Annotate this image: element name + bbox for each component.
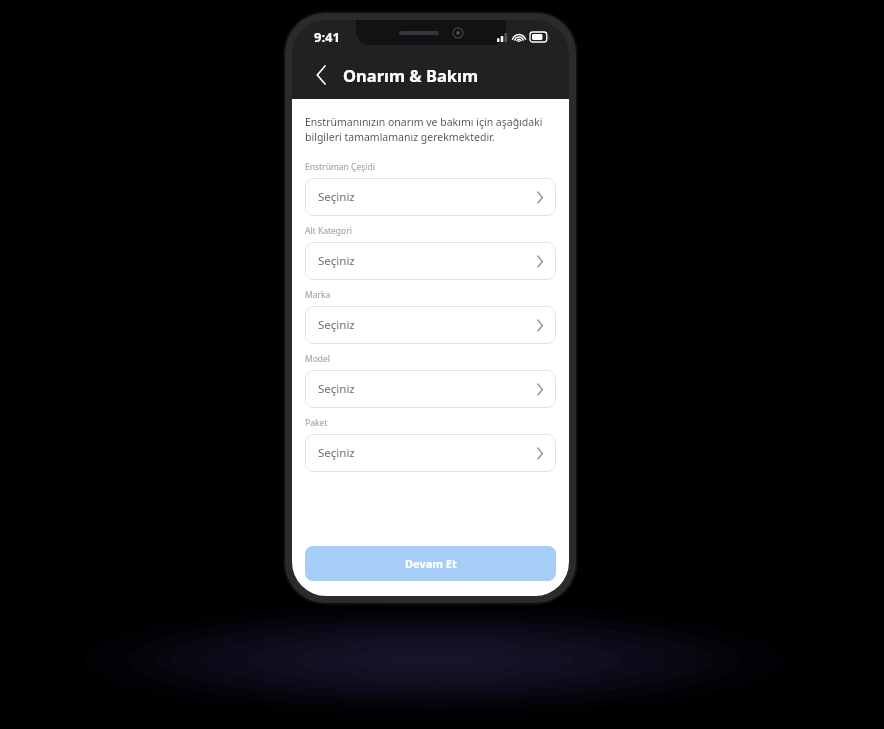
button[interactable]: Seçiniz [305, 434, 556, 472]
staticText: 9:41 [314, 28, 340, 46]
staticText: Seçiniz [318, 381, 355, 397]
button[interactable]: Seçiniz [305, 306, 556, 344]
button[interactable]: Devam Et [305, 546, 556, 581]
staticText: Enstrüman Çeşidi [305, 161, 375, 173]
staticText: Alt Kategori [305, 225, 352, 237]
staticText: Paket [305, 417, 328, 429]
staticText: Devam Et [405, 556, 457, 571]
staticText: Seçiniz [318, 189, 355, 205]
button[interactable]: Seçiniz [305, 242, 556, 280]
button[interactable]: Back [306, 60, 336, 90]
button[interactable]: Seçiniz [305, 178, 556, 216]
staticText: Marka [305, 289, 331, 301]
staticText: Seçiniz [318, 445, 355, 461]
staticText: Onarım & Bakım [343, 64, 479, 86]
staticText: Seçiniz [318, 317, 355, 333]
button[interactable]: Seçiniz [305, 370, 556, 408]
staticText: Model [305, 353, 331, 365]
staticText: Seçiniz [318, 253, 355, 269]
staticText: Enstrümanınızın onarım ve bakımı için aş… [305, 115, 556, 144]
